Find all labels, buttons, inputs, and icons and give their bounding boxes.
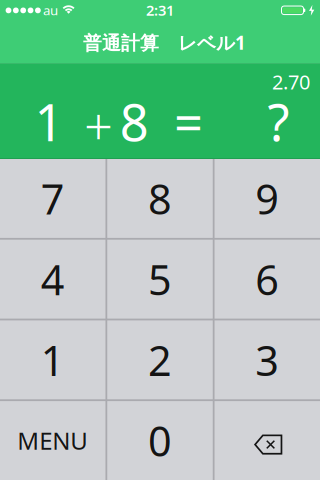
button[interactable]: MENU	[0, 401, 105, 480]
staticText: ?	[267, 88, 289, 155]
staticText: 2	[148, 332, 172, 387]
staticText: 1	[34, 88, 63, 155]
staticText: 1	[41, 332, 65, 387]
staticText: au	[43, 1, 58, 19]
button[interactable]: 2	[107, 320, 213, 399]
button[interactable]: Delete	[214, 401, 320, 480]
staticText: 3	[255, 332, 279, 387]
staticText: 2.70	[272, 68, 310, 95]
button[interactable]: 3	[214, 320, 320, 399]
staticText: 6	[255, 252, 279, 307]
staticText: 8	[148, 171, 172, 226]
staticText: +	[84, 92, 113, 159]
button[interactable]: 8	[107, 159, 213, 238]
staticText: 8	[120, 88, 149, 155]
staticText: 0	[148, 413, 172, 468]
staticText: 2:31	[146, 0, 174, 20]
button[interactable]: 0	[107, 401, 213, 480]
staticText: MENU	[17, 425, 88, 456]
staticText: 4	[41, 252, 65, 307]
button[interactable]: 4	[0, 240, 105, 319]
button[interactable]: 6	[214, 240, 320, 319]
staticText: =	[174, 88, 203, 155]
staticText: 9	[255, 171, 279, 226]
button[interactable]: 1	[0, 320, 105, 399]
staticText: 5	[148, 252, 172, 307]
staticText: 普通計算 レベル1	[83, 30, 246, 55]
button[interactable]: 9	[214, 159, 320, 238]
button[interactable]: 5	[107, 240, 213, 319]
button[interactable]: 7	[0, 159, 105, 238]
staticText: 7	[41, 171, 65, 226]
